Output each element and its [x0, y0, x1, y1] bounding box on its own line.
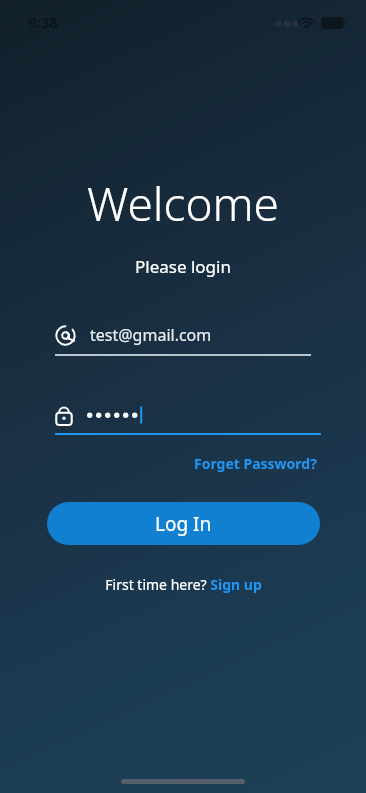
- other: Email: [55, 325, 76, 346]
- staticText: Please login: [135, 255, 231, 278]
- button[interactable]: Password: [55, 393, 321, 435]
- staticText: test@gmail.com: [90, 324, 212, 346]
- other: Password: [55, 404, 73, 425]
- staticText: First time here? Sign up: [105, 575, 262, 594]
- staticText: Log In: [155, 511, 212, 537]
- button[interactable]: First time here? Sign up: [99, 572, 268, 597]
- button[interactable]: Forget Password?: [190, 451, 321, 476]
- staticText: Welcome: [87, 172, 280, 235]
- staticText: 9:38: [28, 12, 58, 32]
- staticText: Forget Password?: [194, 454, 317, 473]
- button[interactable]: Email: [55, 314, 311, 356]
- button[interactable]: Log In: [47, 502, 320, 545]
